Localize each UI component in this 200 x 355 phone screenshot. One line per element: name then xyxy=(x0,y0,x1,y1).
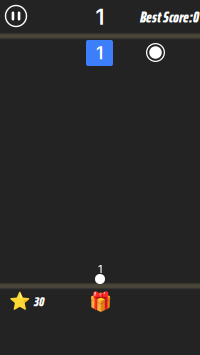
staticText: 30 xyxy=(34,291,44,312)
staticText: 1 xyxy=(95,4,104,30)
staticText: 🎁 xyxy=(89,291,112,313)
button[interactable]: Pause xyxy=(1,1,31,31)
staticText: ⭐ xyxy=(9,291,31,312)
staticText: Best Score:0 xyxy=(140,5,199,29)
staticText: 1 xyxy=(96,42,103,63)
button[interactable]: Open gift xyxy=(89,291,112,313)
staticText: 1 xyxy=(98,262,102,275)
